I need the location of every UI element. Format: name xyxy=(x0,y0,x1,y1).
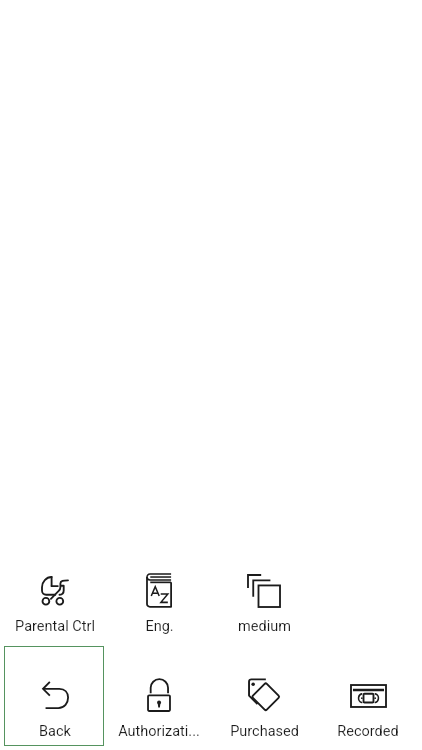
staticText: Purchased xyxy=(230,723,299,740)
staticText: Authorizati... xyxy=(118,723,200,740)
staticText: Eng. xyxy=(145,618,174,635)
button[interactable]: medium xyxy=(212,568,316,639)
button[interactable]: Back xyxy=(3,675,107,744)
button[interactable]: Purchased xyxy=(212,672,316,744)
button[interactable]: Parental Ctrl xyxy=(3,570,107,639)
button[interactable]: Recorded xyxy=(316,678,420,744)
button[interactable]: Authorizati... xyxy=(107,672,211,744)
staticText: Recorded xyxy=(337,723,399,740)
button[interactable]: Eng. xyxy=(107,567,211,639)
staticText: Parental Ctrl xyxy=(15,618,95,635)
staticText: medium xyxy=(238,618,291,635)
staticText: Back xyxy=(39,723,71,740)
